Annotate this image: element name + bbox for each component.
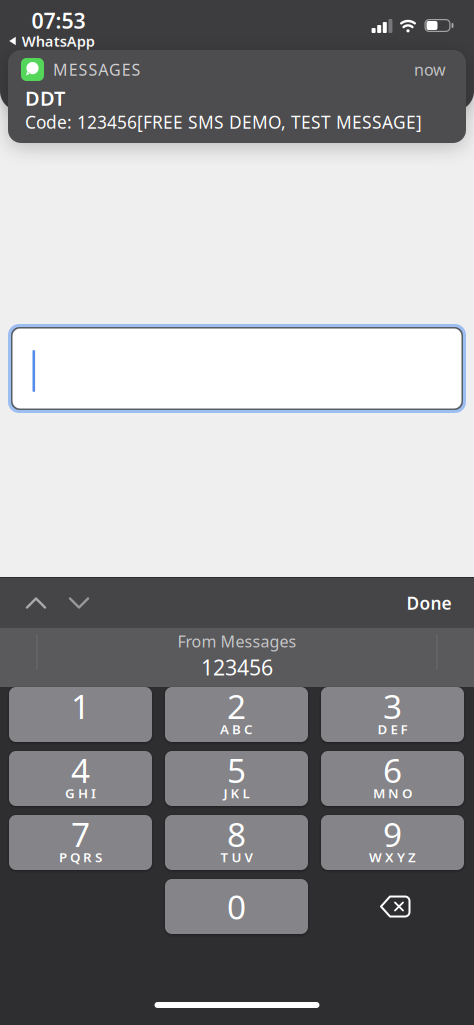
staticText: V bbox=[244, 848, 252, 866]
staticText: R bbox=[83, 848, 92, 866]
button[interactable]: 6 bbox=[321, 751, 464, 806]
button[interactable]: 4 bbox=[9, 751, 152, 806]
staticText: C bbox=[244, 720, 253, 738]
staticText: O bbox=[402, 784, 412, 802]
button[interactable]: Verification code text field bbox=[8, 324, 466, 413]
staticText: W bbox=[369, 848, 382, 866]
staticText: L bbox=[242, 784, 249, 802]
button[interactable]: Next field bbox=[62, 590, 96, 615]
staticText: 123456 bbox=[201, 653, 273, 681]
staticText: 2 bbox=[227, 684, 246, 728]
button[interactable]: 9 bbox=[321, 815, 464, 870]
button[interactable]: 0 bbox=[165, 879, 308, 934]
button[interactable]: 7 bbox=[9, 815, 152, 870]
staticText: DDT bbox=[25, 85, 65, 111]
staticText: Done bbox=[406, 591, 451, 614]
staticText: N bbox=[388, 784, 399, 802]
button[interactable]: 8 bbox=[165, 815, 308, 870]
button[interactable]: 5 bbox=[165, 751, 308, 806]
staticText: A bbox=[220, 720, 229, 738]
staticText: D bbox=[377, 720, 387, 738]
staticText: M bbox=[373, 784, 385, 802]
button[interactable]: 2 bbox=[165, 687, 308, 742]
staticText: I bbox=[91, 784, 96, 802]
staticText: H bbox=[78, 784, 88, 802]
button[interactable]: 3 bbox=[321, 687, 464, 742]
staticText: Z bbox=[408, 848, 416, 866]
staticText: From Messages bbox=[177, 631, 296, 652]
staticText: E bbox=[390, 720, 397, 738]
staticText: 1 bbox=[71, 684, 90, 728]
staticText: F bbox=[400, 720, 407, 738]
staticText: 9 bbox=[383, 812, 402, 856]
staticText: 0 bbox=[227, 884, 246, 929]
staticText: Q bbox=[70, 848, 80, 866]
staticText: P bbox=[59, 848, 67, 866]
staticText: 7 bbox=[71, 812, 90, 856]
staticText: 6 bbox=[383, 748, 402, 792]
staticText: now bbox=[414, 59, 446, 80]
button[interactable]: 1 bbox=[9, 687, 152, 742]
button[interactable]: Autofill code 123456 from Messages bbox=[47, 628, 427, 683]
staticText: T bbox=[220, 848, 228, 866]
staticText: Y bbox=[397, 848, 405, 866]
staticText: 07:53 bbox=[31, 6, 85, 35]
staticText: 8 bbox=[227, 812, 246, 856]
button[interactable]: Done bbox=[400, 585, 457, 620]
staticText: X bbox=[385, 848, 394, 866]
staticText: 4 bbox=[71, 748, 90, 792]
staticText: S bbox=[95, 848, 102, 866]
staticText: MESSAGES bbox=[53, 59, 141, 80]
button[interactable]: Return to WhatsApp bbox=[9, 31, 95, 51]
staticText: Code: 123456[FREE SMS DEMO, TEST MESSAGE… bbox=[25, 110, 422, 133]
staticText: K bbox=[230, 784, 239, 802]
staticText: WhatsApp bbox=[22, 31, 95, 51]
staticText: 5 bbox=[227, 748, 246, 792]
staticText: 3 bbox=[383, 684, 402, 728]
button[interactable]: Previous field bbox=[19, 590, 53, 615]
staticText: B bbox=[232, 720, 241, 738]
button[interactable]: Messages notification from DDT bbox=[8, 50, 466, 143]
staticText: U bbox=[231, 848, 241, 866]
staticText: J bbox=[223, 784, 227, 802]
button[interactable]: Delete bbox=[366, 881, 424, 931]
staticText: G bbox=[65, 784, 75, 802]
